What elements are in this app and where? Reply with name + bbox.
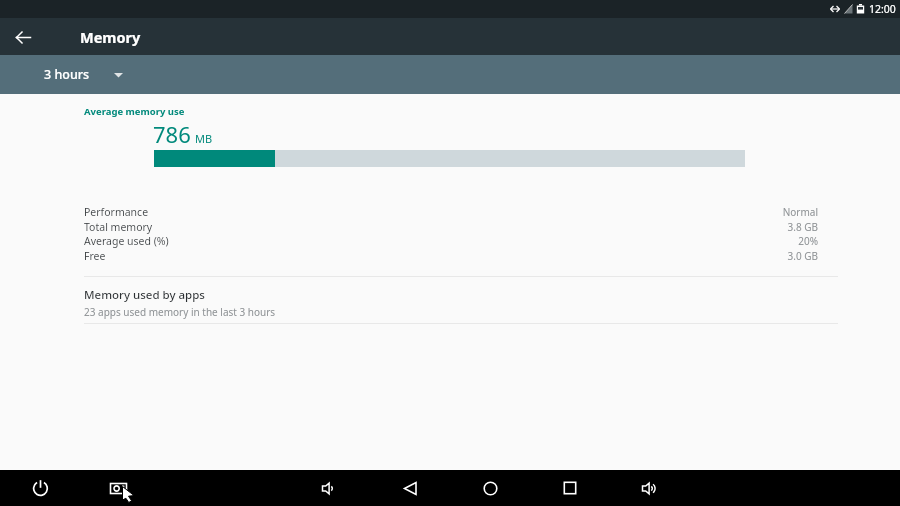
staticText: Total memory [84,220,153,234]
button[interactable]: Volume down [312,470,348,506]
staticText: Performance [84,205,149,219]
staticText: Free [84,249,106,263]
staticText: Normal [782,205,818,219]
staticText: 12:00 [869,2,896,16]
button[interactable]: Screenshot [100,470,136,506]
button[interactable]: Back [392,470,428,506]
staticText: 23 apps used memory in the last 3 hours [84,305,276,319]
staticText: 786 [153,119,191,149]
staticText: 3.8 GB [787,220,818,234]
button[interactable]: Home [472,470,508,506]
staticText: 3.0 GB [787,249,818,263]
staticText: 3 hours [44,66,90,83]
staticText: 20% [798,234,818,248]
button[interactable]: Volume up [632,470,668,506]
staticText: Average used (%) [84,234,169,248]
button[interactable]: Power [22,470,58,506]
button[interactable]: 3 hours [36,60,131,89]
staticText: Average memory use [84,105,185,118]
button[interactable]: Memory used by apps [0,282,900,325]
staticText: MB [195,131,213,146]
button[interactable]: Recent apps [552,470,588,506]
staticText: Memory [80,27,141,47]
staticText: Memory used by apps [84,287,205,303]
button[interactable]: Back [9,23,37,51]
